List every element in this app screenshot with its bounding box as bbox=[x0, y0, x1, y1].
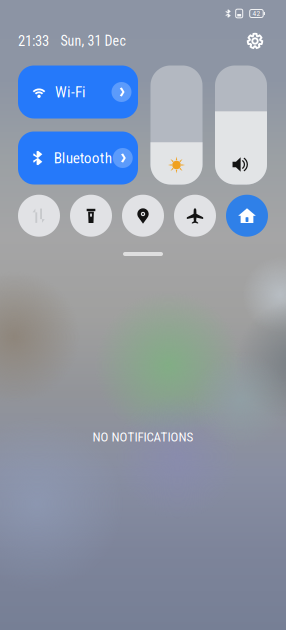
staticText: NO NOTIFICATIONS bbox=[92, 429, 193, 445]
button[interactable]: Location bbox=[122, 195, 164, 237]
button[interactable]: Volume bbox=[215, 65, 267, 184]
button[interactable]: Mobile data bbox=[18, 195, 60, 237]
staticText: 42 bbox=[252, 9, 260, 18]
button[interactable]: Smart home bbox=[226, 195, 268, 237]
button[interactable]: Wi-Fi bbox=[18, 65, 138, 118]
button[interactable]: Bluetooth bbox=[18, 131, 138, 184]
button[interactable]: Flashlight bbox=[70, 195, 112, 237]
button[interactable]: Airplane mode bbox=[174, 195, 216, 237]
staticText: 21:33 bbox=[18, 32, 49, 50]
button[interactable]: Settings bbox=[242, 28, 268, 54]
staticText: Bluetooth bbox=[54, 149, 112, 167]
staticText: Sun, 31 Dec bbox=[60, 33, 125, 49]
button[interactable]: Brightness bbox=[150, 65, 202, 184]
staticText: Wi-Fi bbox=[55, 83, 86, 101]
